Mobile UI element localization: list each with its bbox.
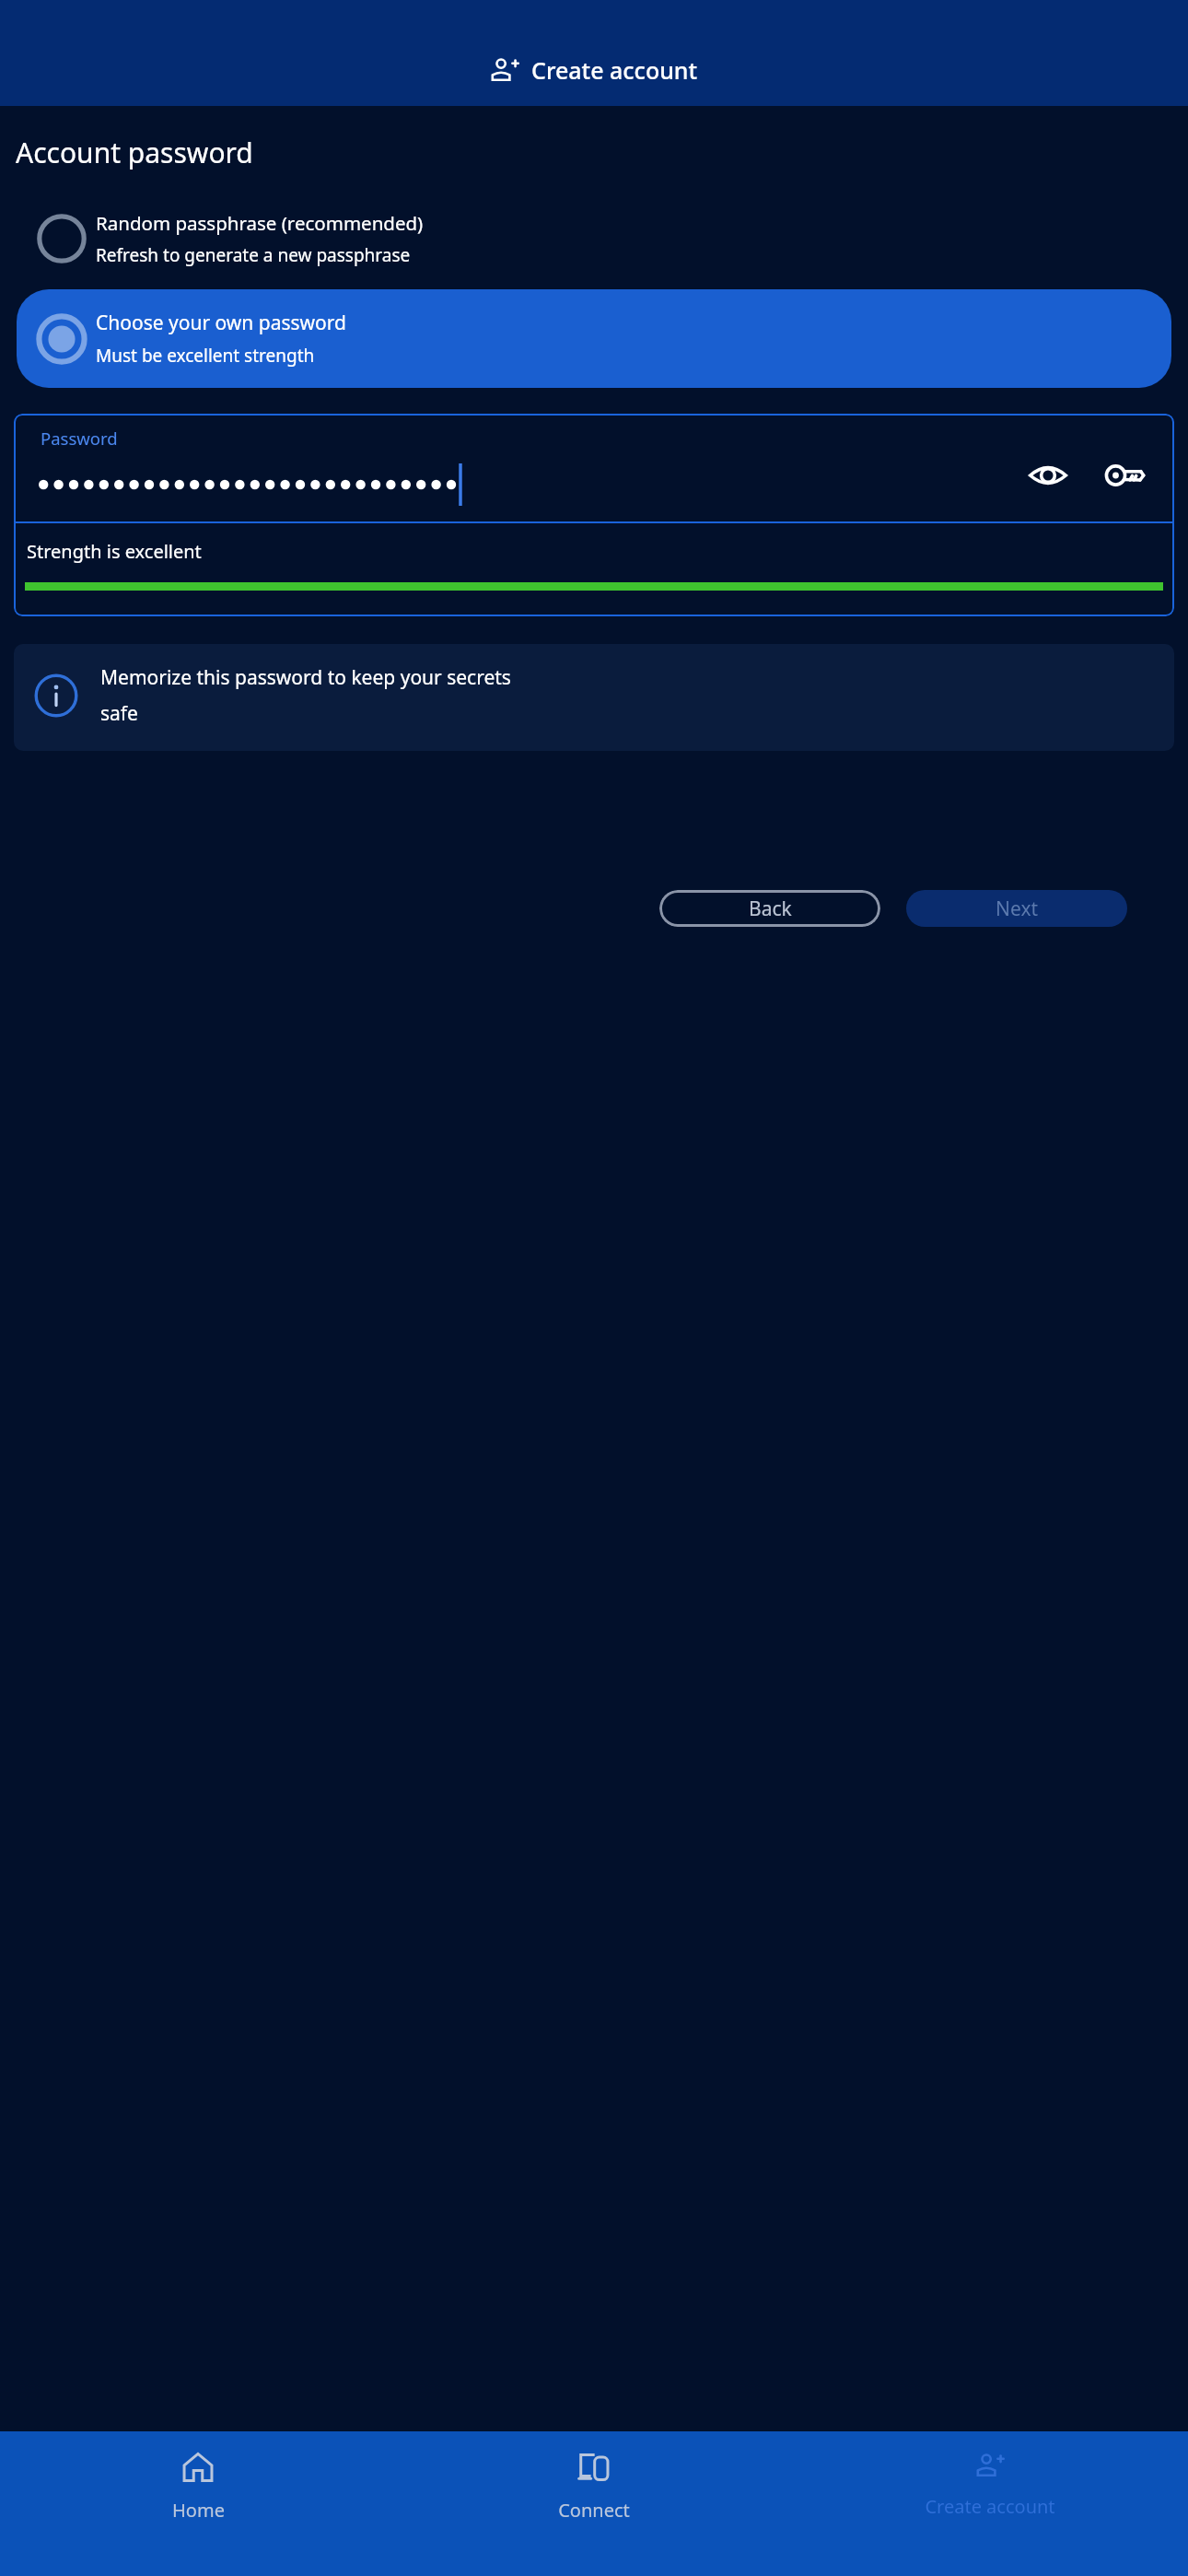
staticText: Must be excellent strength (96, 344, 315, 368)
staticText: Memorize this password to keep your secr… (100, 664, 511, 691)
button[interactable]: Next (906, 890, 1127, 927)
staticText: Random passphrase (recommended) (96, 210, 424, 236)
button[interactable]: Back (659, 890, 880, 927)
staticText: Create account (531, 54, 698, 86)
staticText: safe (100, 700, 138, 727)
staticText: Choose your own password (96, 310, 346, 336)
staticText: Password (41, 427, 118, 450)
staticText: Connect (558, 2498, 630, 2523)
button[interactable]: Create account (792, 2431, 1188, 2519)
button[interactable]: Choose your own password (17, 289, 1171, 388)
staticText: Back (749, 896, 792, 922)
button[interactable]: Show password (1019, 447, 1077, 504)
staticText: Next (996, 896, 1039, 922)
staticText: Strength is excellent (27, 539, 202, 564)
staticText: Account password (16, 134, 253, 171)
staticText: Refresh to generate a new passphrase (96, 243, 411, 267)
button[interactable]: Password (14, 414, 1174, 521)
button[interactable]: Random passphrase (recommended) (17, 199, 1171, 278)
button[interactable]: Password manager (1097, 447, 1154, 504)
button[interactable]: Home (0, 2431, 396, 2523)
button[interactable]: Connect (396, 2431, 792, 2523)
staticText: Home (172, 2498, 225, 2523)
staticText: Create account (925, 2494, 1055, 2519)
